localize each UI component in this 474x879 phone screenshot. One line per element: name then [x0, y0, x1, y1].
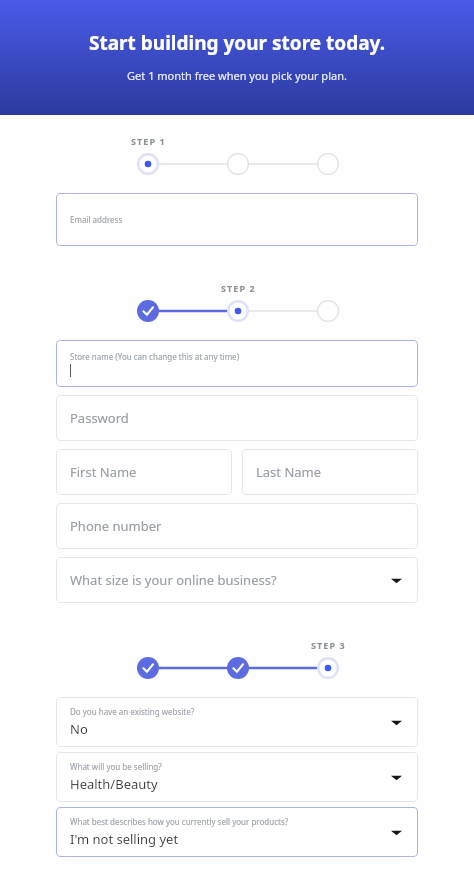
button[interactable]: Password	[56, 395, 418, 441]
staticText: I'm not selling yet	[70, 830, 179, 848]
staticText: What size is your online business?	[70, 571, 277, 589]
button[interactable]: Last Name	[242, 449, 418, 495]
button[interactable]: What will you be selling?	[56, 752, 418, 802]
staticText: STEP 3	[311, 639, 346, 651]
button[interactable]: Email address	[56, 193, 418, 246]
staticText: First Name	[70, 463, 137, 481]
staticText: No	[70, 720, 88, 738]
button[interactable]: Progress STEP 2	[0, 296, 474, 326]
button[interactable]: Store name (You can change this at any t…	[56, 340, 418, 387]
staticText: Do you have an existing website?	[70, 706, 195, 717]
button[interactable]: Progress STEP 1	[0, 149, 474, 179]
staticText: Health/Beauty	[70, 775, 158, 793]
button[interactable]: Do you have an existing website?	[56, 697, 418, 747]
button[interactable]: What size is your online business?	[56, 557, 418, 603]
staticText: Get 1 month free when you pick your plan…	[127, 68, 347, 83]
button[interactable]: Phone number	[56, 503, 418, 549]
button[interactable]: What best describes how you currently se…	[56, 807, 418, 857]
staticText: STEP 2	[221, 282, 256, 294]
staticText: Last Name	[256, 463, 322, 481]
staticText: Start building your store today.	[89, 30, 385, 56]
staticText: STEP 1	[131, 135, 166, 147]
staticText: What best describes how you currently se…	[70, 816, 289, 827]
button[interactable]: First Name	[56, 449, 232, 495]
button[interactable]: Progress STEP 3	[0, 653, 474, 683]
staticText: Password	[70, 409, 129, 427]
staticText: Phone number	[70, 517, 162, 535]
staticText: Store name (You can change this at any t…	[70, 351, 240, 362]
staticText: What will you be selling?	[70, 761, 162, 772]
staticText: Email address	[70, 214, 123, 225]
